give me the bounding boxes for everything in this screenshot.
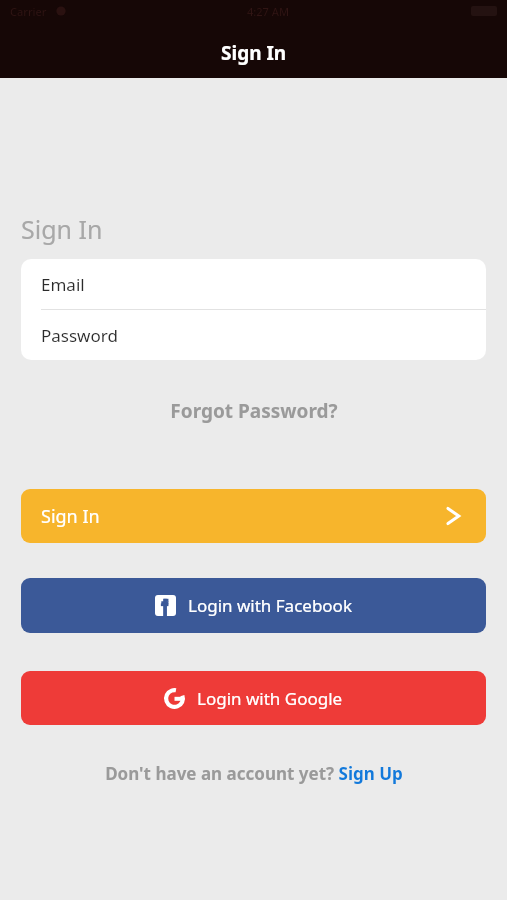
button[interactable]: Sign In: [21, 489, 486, 543]
staticText: Sign In: [41, 504, 100, 529]
staticText: Email: [41, 273, 85, 296]
staticText: Login with Google: [197, 687, 343, 710]
staticText: Login with Facebook: [188, 594, 352, 617]
staticText: Carrier: [10, 4, 47, 19]
staticText: Password: [41, 324, 118, 347]
button[interactable]: Email: [21, 259, 486, 309]
staticText: Sign In: [21, 212, 103, 246]
staticText: Forgot Password?: [170, 398, 338, 424]
button[interactable]: Login with Google: [21, 671, 486, 725]
button[interactable]: Password: [21, 310, 486, 360]
staticText: Sign In: [221, 40, 287, 66]
button[interactable]: Forgot Password?: [0, 398, 507, 424]
staticText: 4:27 AM: [247, 4, 290, 19]
button[interactable]: Login with Facebook: [21, 578, 486, 633]
button[interactable]: Don't have an account yet? Sign Up: [105, 762, 403, 785]
